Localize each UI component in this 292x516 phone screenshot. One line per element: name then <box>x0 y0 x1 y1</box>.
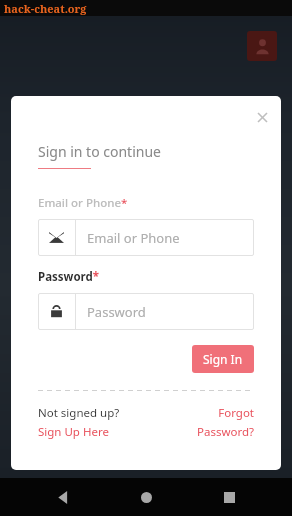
button[interactable]: Email or Phone <box>38 219 254 256</box>
button[interactable]: Home <box>126 478 166 516</box>
button[interactable]: Profile <box>247 31 277 61</box>
button[interactable]: Recents <box>209 478 249 516</box>
staticText: Sign Up Here <box>38 424 109 440</box>
button[interactable]: Password <box>38 293 254 330</box>
button[interactable]: Sign In <box>192 345 254 373</box>
button[interactable]: Close <box>249 104 275 130</box>
staticText: Sign In <box>203 351 243 367</box>
staticText: Forgot <box>218 405 254 421</box>
staticText: Password <box>87 303 146 321</box>
button[interactable]: Back <box>43 478 83 516</box>
staticText: hack-cheat.org <box>4 1 87 16</box>
staticText: Not signed up? <box>38 405 120 421</box>
button[interactable]: Forgot <box>146 405 254 440</box>
staticText: Password* <box>38 269 100 285</box>
staticText: Email or Phone <box>87 229 180 247</box>
staticText: Email or Phone* <box>38 195 128 211</box>
staticText: Password? <box>196 424 254 440</box>
button[interactable]: Not signed up? <box>38 405 146 440</box>
staticText: Sign in to continue <box>38 142 161 161</box>
